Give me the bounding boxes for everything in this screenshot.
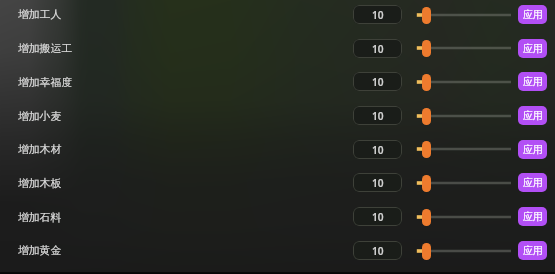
staticText: 应用 [523,75,543,88]
button[interactable]: 10 [353,72,402,91]
button[interactable]: Adjust amount [414,241,511,261]
button[interactable]: 增加木材 [18,143,62,157]
staticText: 增加工人 [18,8,62,22]
staticText: 应用 [523,176,543,189]
button[interactable]: 应用 [518,106,547,125]
staticText: 增加幸福度 [18,76,72,90]
staticText: 10 [372,176,384,190]
button[interactable]: 应用 [518,39,547,58]
button[interactable]: 应用 [518,173,547,192]
button[interactable]: 增加小麦 [18,110,62,124]
button[interactable]: Adjust amount [414,207,511,227]
button[interactable]: 增加搬运工 [18,42,72,56]
button[interactable]: Adjust amount [414,5,511,25]
button[interactable]: Adjust amount [414,173,511,193]
button[interactable]: 应用 [518,241,547,260]
button[interactable]: Adjust amount [414,139,511,159]
button[interactable]: 应用 [518,207,547,226]
button[interactable]: 10 [353,5,402,24]
staticText: 增加小麦 [18,110,62,124]
button[interactable]: Adjust amount [414,106,511,126]
staticText: 10 [372,109,384,123]
staticText: 10 [372,244,384,258]
button[interactable]: 10 [353,140,402,159]
staticText: 10 [372,42,384,56]
staticText: 增加木板 [18,177,62,191]
button[interactable]: 增加木板 [18,177,62,191]
button[interactable]: 增加工人 [18,8,62,22]
staticText: 应用 [523,8,543,21]
staticText: 应用 [523,42,543,55]
button[interactable]: 应用 [518,140,547,159]
button[interactable]: 增加幸福度 [18,76,72,90]
staticText: 10 [372,143,384,157]
staticText: 增加搬运工 [18,42,72,56]
button[interactable]: 10 [353,241,402,260]
staticText: 应用 [523,109,543,122]
button[interactable]: 10 [353,39,402,58]
button[interactable]: 增加黄金 [18,244,62,258]
button[interactable]: 应用 [518,72,547,91]
staticText: 增加黄金 [18,244,62,258]
button[interactable]: 10 [353,207,402,226]
staticText: 增加木材 [18,143,62,157]
button[interactable]: Adjust amount [414,72,511,92]
staticText: 应用 [523,210,543,223]
button[interactable]: 应用 [518,5,547,24]
staticText: 应用 [523,244,543,257]
button[interactable]: 10 [353,106,402,125]
button[interactable]: Adjust amount [414,38,511,58]
staticText: 10 [372,75,384,89]
staticText: 10 [372,210,384,224]
staticText: 10 [372,8,384,22]
staticText: 应用 [523,143,543,156]
staticText: 增加石料 [18,211,62,225]
button[interactable]: 增加石料 [18,211,62,225]
button[interactable]: 10 [353,173,402,192]
